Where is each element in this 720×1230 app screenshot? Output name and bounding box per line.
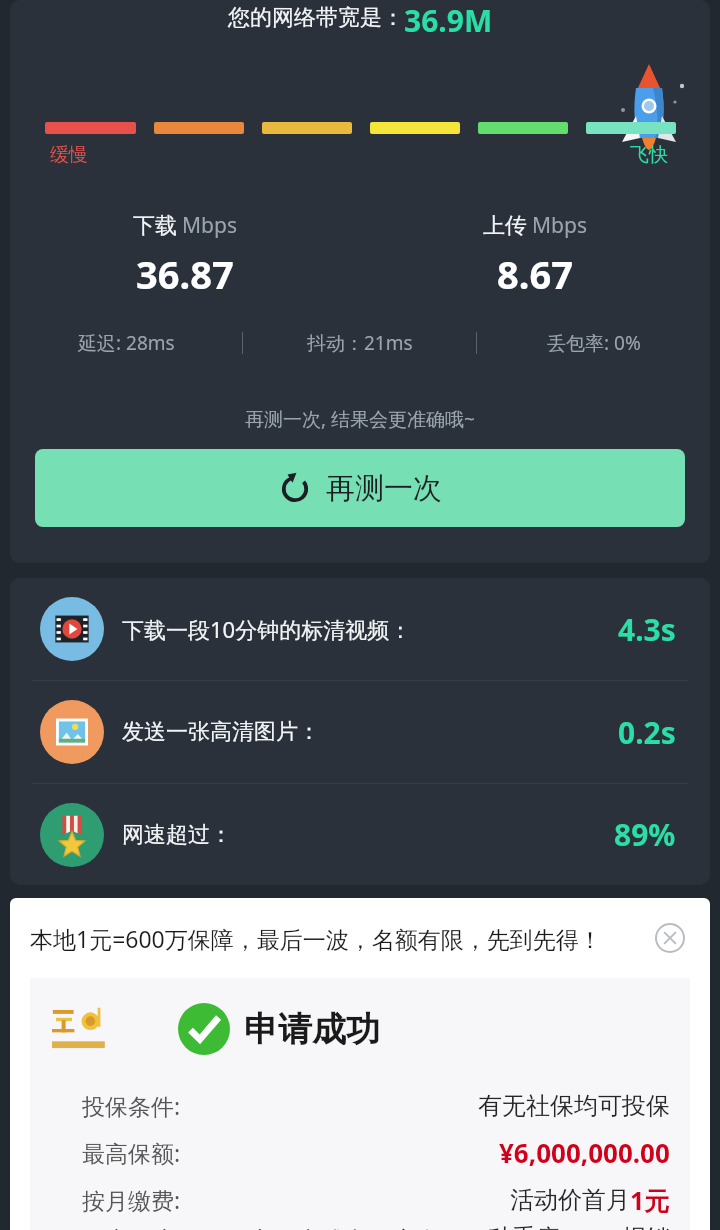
button[interactable]: 下载一段10分钟的标清视频：: [10, 578, 710, 680]
staticText: 下载: [133, 212, 177, 240]
button[interactable]: 网速超过：: [10, 784, 710, 885]
button[interactable]: 关闭广告: [650, 918, 690, 958]
staticText: 有无社保均可投保: [478, 1091, 670, 1121]
staticText: 报销: [622, 1223, 670, 1230]
staticText: 延迟: 28ms: [78, 330, 175, 356]
staticText: 0.2s: [618, 712, 676, 753]
staticText: 按月缴费:: [82, 1184, 181, 1215]
staticText: 丢包率: 0%: [547, 330, 641, 356]
staticText: 小到流感大到癌症,: [247, 1223, 446, 1230]
staticText: 再测一次: [326, 470, 442, 507]
staticText: 发送一张高清图片：: [122, 718, 320, 746]
staticText: 活动价首月: [510, 1185, 630, 1215]
staticText: 申请成功: [244, 1008, 380, 1051]
staticText: 4.3s: [618, 609, 676, 650]
staticText: 36.9M: [404, 0, 493, 36]
button[interactable]: 再测一次: [35, 449, 685, 527]
staticText: Mbps: [182, 211, 237, 240]
staticText: 投保条件:: [82, 1090, 181, 1121]
staticText: 1元: [630, 1183, 670, 1217]
staticText: 种重疾: [488, 1223, 560, 1230]
staticText: 上传: [483, 212, 527, 240]
staticText: Mbps: [532, 211, 587, 240]
staticText: 最高保额:: [82, 1137, 181, 1168]
staticText: ¥6,000,000.00: [499, 1135, 670, 1170]
staticText: 下载一段10分钟的标清视频：: [122, 614, 412, 644]
staticText: 飞快: [630, 143, 668, 167]
staticText: 本地1元=600万保障，最后一波，名额有限，先到先得！: [30, 923, 602, 954]
staticText: 您的网络带宽是：: [228, 4, 404, 32]
staticText: 抖动：21ms: [307, 330, 413, 356]
staticText: 89%: [614, 814, 676, 855]
button[interactable]: 发送一张高清图片：: [10, 681, 710, 783]
staticText: 再测一次, 结果会更准确哦~: [10, 406, 710, 432]
staticText: 36.87: [136, 248, 234, 300]
staticText: 医疗保障:: [82, 1223, 181, 1230]
staticText: 网速超过：: [122, 821, 232, 849]
staticText: 8.67: [497, 248, 573, 300]
button[interactable]: 申请成功: [30, 978, 690, 1230]
staticText: 缓慢: [50, 143, 88, 167]
